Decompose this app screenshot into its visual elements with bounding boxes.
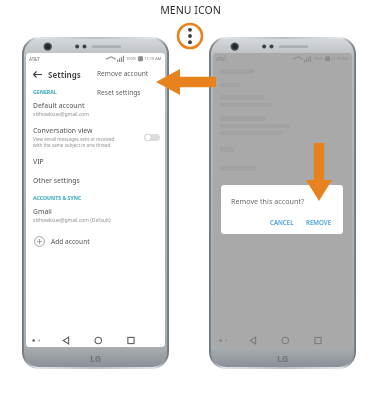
button[interactable]: CANCEL [266,215,298,229]
staticText: AT&T [216,56,227,62]
staticText: Other settings [33,176,80,185]
staticText: 100% [313,56,324,61]
button[interactable]: Conversation view [26,122,165,152]
staticText: MENU ICON [160,3,221,17]
staticText: GENERAL [33,88,57,95]
staticText: Conversation view [33,126,93,135]
button[interactable]: Add account [26,231,165,251]
button[interactable]: Remove account [90,64,164,83]
staticText: CANCEL [270,218,294,226]
staticText: Gmail [33,207,52,216]
button[interactable]: VIP [26,152,165,171]
staticText: View email messages sent or received wit… [33,136,115,148]
button[interactable]: Back [31,68,44,81]
staticText: ACCOUNTS & SYNC [33,194,82,201]
staticText: AT&T [29,56,40,62]
staticText: VIP [33,157,44,166]
staticText: Settings [48,69,81,80]
staticText: Add account [51,237,90,246]
staticText: stthowksue@gmail.com [33,111,89,118]
staticText: Default account [33,101,85,110]
staticText: Remove account [97,69,149,78]
staticText: 11:10 AM [331,56,349,61]
button[interactable] [144,133,160,142]
button[interactable]: Menu icon [176,22,204,50]
staticText: LG [277,352,289,364]
button[interactable]: Gmail [26,204,165,228]
button[interactable]: Default account [26,98,165,122]
staticText: 100% [126,56,137,61]
staticText: LG [90,352,102,364]
staticText: 11:10 AM [144,56,162,61]
staticText: REMOVE [306,218,332,226]
button[interactable]: REMOVE [302,215,336,229]
button[interactable]: Other settings [26,171,165,190]
staticText: Reset settings [97,88,141,97]
staticText: Remove this account? [231,196,305,206]
staticText: stthowksue@gmail.com (Default) [33,217,111,224]
button[interactable]: Reset settings [90,83,164,102]
